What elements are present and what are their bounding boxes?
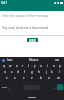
button[interactable]: q <box>2 63 6 69</box>
staticText: c <box>23 76 25 80</box>
staticText: v <box>31 76 33 80</box>
button[interactable]: u <box>39 63 43 69</box>
staticText: . <box>54 86 55 90</box>
staticText: Hey mak, show me a how moved <box>2 26 49 30</box>
button[interactable]: . <box>53 85 56 90</box>
button[interactable]: x <box>13 75 17 81</box>
button[interactable]: l <box>57 69 61 75</box>
staticText: u <box>40 64 42 68</box>
staticText: b <box>40 76 42 80</box>
button[interactable]: a <box>3 69 7 75</box>
staticText: q <box>3 64 5 68</box>
staticText: love <box>7 58 13 62</box>
staticText: SEND <box>29 39 36 42</box>
staticText: j <box>46 70 47 74</box>
button[interactable]: b <box>39 75 43 81</box>
staticText: p <box>59 64 61 68</box>
button[interactable]: m <box>56 75 60 81</box>
staticText: , <box>9 86 10 90</box>
button[interactable]: r <box>21 63 25 69</box>
staticText: w <box>9 64 12 68</box>
staticText: a <box>4 70 6 74</box>
staticText: k <box>51 70 53 74</box>
button[interactable]: d <box>16 69 20 75</box>
button[interactable]: z <box>5 75 9 81</box>
button[interactable]: s <box>10 69 14 75</box>
staticText: 9:41 <box>1 1 7 5</box>
button[interactable]: g <box>30 69 34 75</box>
button[interactable]: h <box>37 69 41 75</box>
staticText: m <box>57 76 60 80</box>
staticText: d <box>17 70 19 74</box>
button[interactable]: y <box>33 63 37 69</box>
staticText: o <box>53 64 55 68</box>
button[interactable]: ?123 <box>1 85 7 90</box>
button[interactable]: j <box>44 69 48 75</box>
staticText: s <box>11 70 13 74</box>
button[interactable]: f <box>23 69 27 75</box>
staticText: l <box>59 70 60 74</box>
staticText: n <box>48 76 50 80</box>
staticText: g <box>31 70 33 74</box>
staticText: z <box>6 76 8 80</box>
staticText: h <box>38 70 40 74</box>
button[interactable]: e <box>15 63 19 69</box>
button[interactable]: p <box>58 63 62 69</box>
button[interactable]: n <box>47 75 51 81</box>
button[interactable]: k <box>50 69 54 75</box>
button[interactable]: t <box>27 63 31 69</box>
staticText: ?123 <box>2 86 7 89</box>
button[interactable]: i <box>45 63 49 69</box>
button[interactable]: SEND <box>27 38 38 42</box>
staticText: x <box>14 76 16 80</box>
staticText: me <box>55 58 60 62</box>
button[interactable]: o <box>52 63 56 69</box>
staticText: Enter the subject of the message <box>2 14 49 18</box>
button[interactable]: Enter <box>57 84 63 90</box>
staticText: t <box>28 64 30 68</box>
staticText: r <box>22 64 24 68</box>
staticText: y <box>34 64 36 68</box>
staticText: e <box>16 64 18 68</box>
button[interactable]: w <box>8 63 12 69</box>
staticText: i <box>47 64 48 68</box>
button[interactable]: c <box>22 75 26 81</box>
staticText: Movies <box>29 58 39 62</box>
staticText: f <box>24 70 26 74</box>
button[interactable]: v <box>30 75 34 81</box>
button[interactable]: Emoji <box>8 85 11 90</box>
